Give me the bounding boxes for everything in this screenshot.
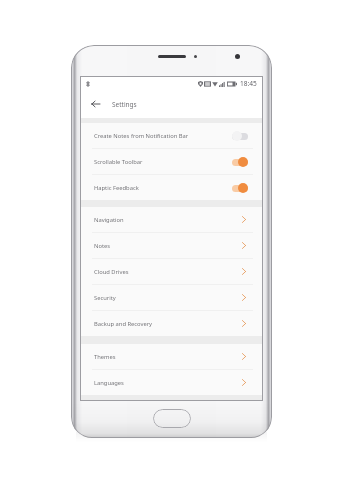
staticText: Backup and Recovery xyxy=(94,320,153,328)
staticText: Cloud Drives xyxy=(94,268,129,276)
staticText: Haptic Feedback xyxy=(94,184,139,192)
staticText: Settings xyxy=(112,100,137,109)
staticText: Themes xyxy=(94,353,116,361)
staticText: Navigation xyxy=(94,216,124,224)
staticText: Scrollable Toolbar xyxy=(94,158,143,166)
button[interactable]: Create Notes from Notification Bar xyxy=(81,123,262,148)
button[interactable]: Cloud Drives xyxy=(81,259,262,284)
button[interactable]: Home xyxy=(153,409,191,428)
button[interactable]: Navigation xyxy=(81,207,262,232)
staticText: Create Notes from Notification Bar xyxy=(94,132,189,140)
button[interactable]: Back xyxy=(87,96,103,112)
staticText: Languages xyxy=(94,379,124,387)
button[interactable]: Languages xyxy=(81,370,262,395)
staticText: 18:45 xyxy=(240,79,257,88)
button[interactable]: Notes xyxy=(81,233,262,258)
button[interactable]: Scrollable Toolbar xyxy=(81,149,262,174)
button[interactable]: Haptic Feedback xyxy=(81,175,262,200)
staticText: Notes xyxy=(94,242,111,250)
button[interactable]: Backup and Recovery xyxy=(81,311,262,336)
staticText: Security xyxy=(94,294,116,302)
button[interactable]: Themes xyxy=(81,344,262,369)
button[interactable]: Security xyxy=(81,285,262,310)
